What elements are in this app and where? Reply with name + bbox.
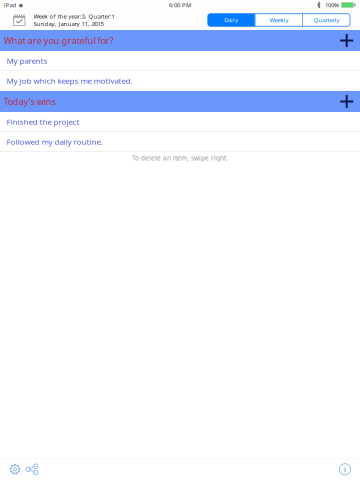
staticText: Followed my daily routine.	[7, 136, 103, 147]
staticText: Sunday, January 11, 2015	[34, 20, 104, 28]
staticText: iPad	[4, 1, 17, 9]
staticText: 6:00 PM	[169, 1, 191, 9]
button[interactable]: Followed my daily routine.	[0, 132, 360, 152]
button[interactable]: Quarterly	[303, 14, 350, 26]
staticText: 100%	[325, 1, 339, 9]
button[interactable]: Today's wins	[0, 91, 360, 112]
button[interactable]: My parents	[0, 51, 360, 71]
staticText: Weekly	[269, 16, 288, 24]
button[interactable]: Daily	[208, 14, 255, 26]
staticText: What are you grateful for?	[4, 34, 114, 47]
staticText: Quarterly	[313, 16, 339, 24]
staticText: Today's wins	[4, 95, 56, 108]
button[interactable]: Settings	[6, 459, 23, 480]
staticText: To delete an item, swipe right.	[132, 154, 228, 162]
button[interactable]: Share	[23, 459, 40, 480]
button[interactable]: Info	[336, 459, 354, 480]
staticText: My job which keeps me motivated.	[7, 75, 133, 86]
button[interactable]: My job which keeps me motivated.	[0, 71, 360, 91]
button[interactable]: Weekly	[255, 14, 302, 26]
button[interactable]: What are you grateful for?	[0, 30, 360, 51]
staticText: My parents	[7, 55, 48, 66]
staticText: Daily	[224, 16, 238, 24]
staticText: Finished the project	[7, 116, 80, 127]
button[interactable]: Week of the year:3, Quarter:1	[0, 12, 115, 28]
button[interactable]: Finished the project	[0, 112, 360, 132]
staticText: Week of the year:3, Quarter:1	[34, 12, 115, 20]
